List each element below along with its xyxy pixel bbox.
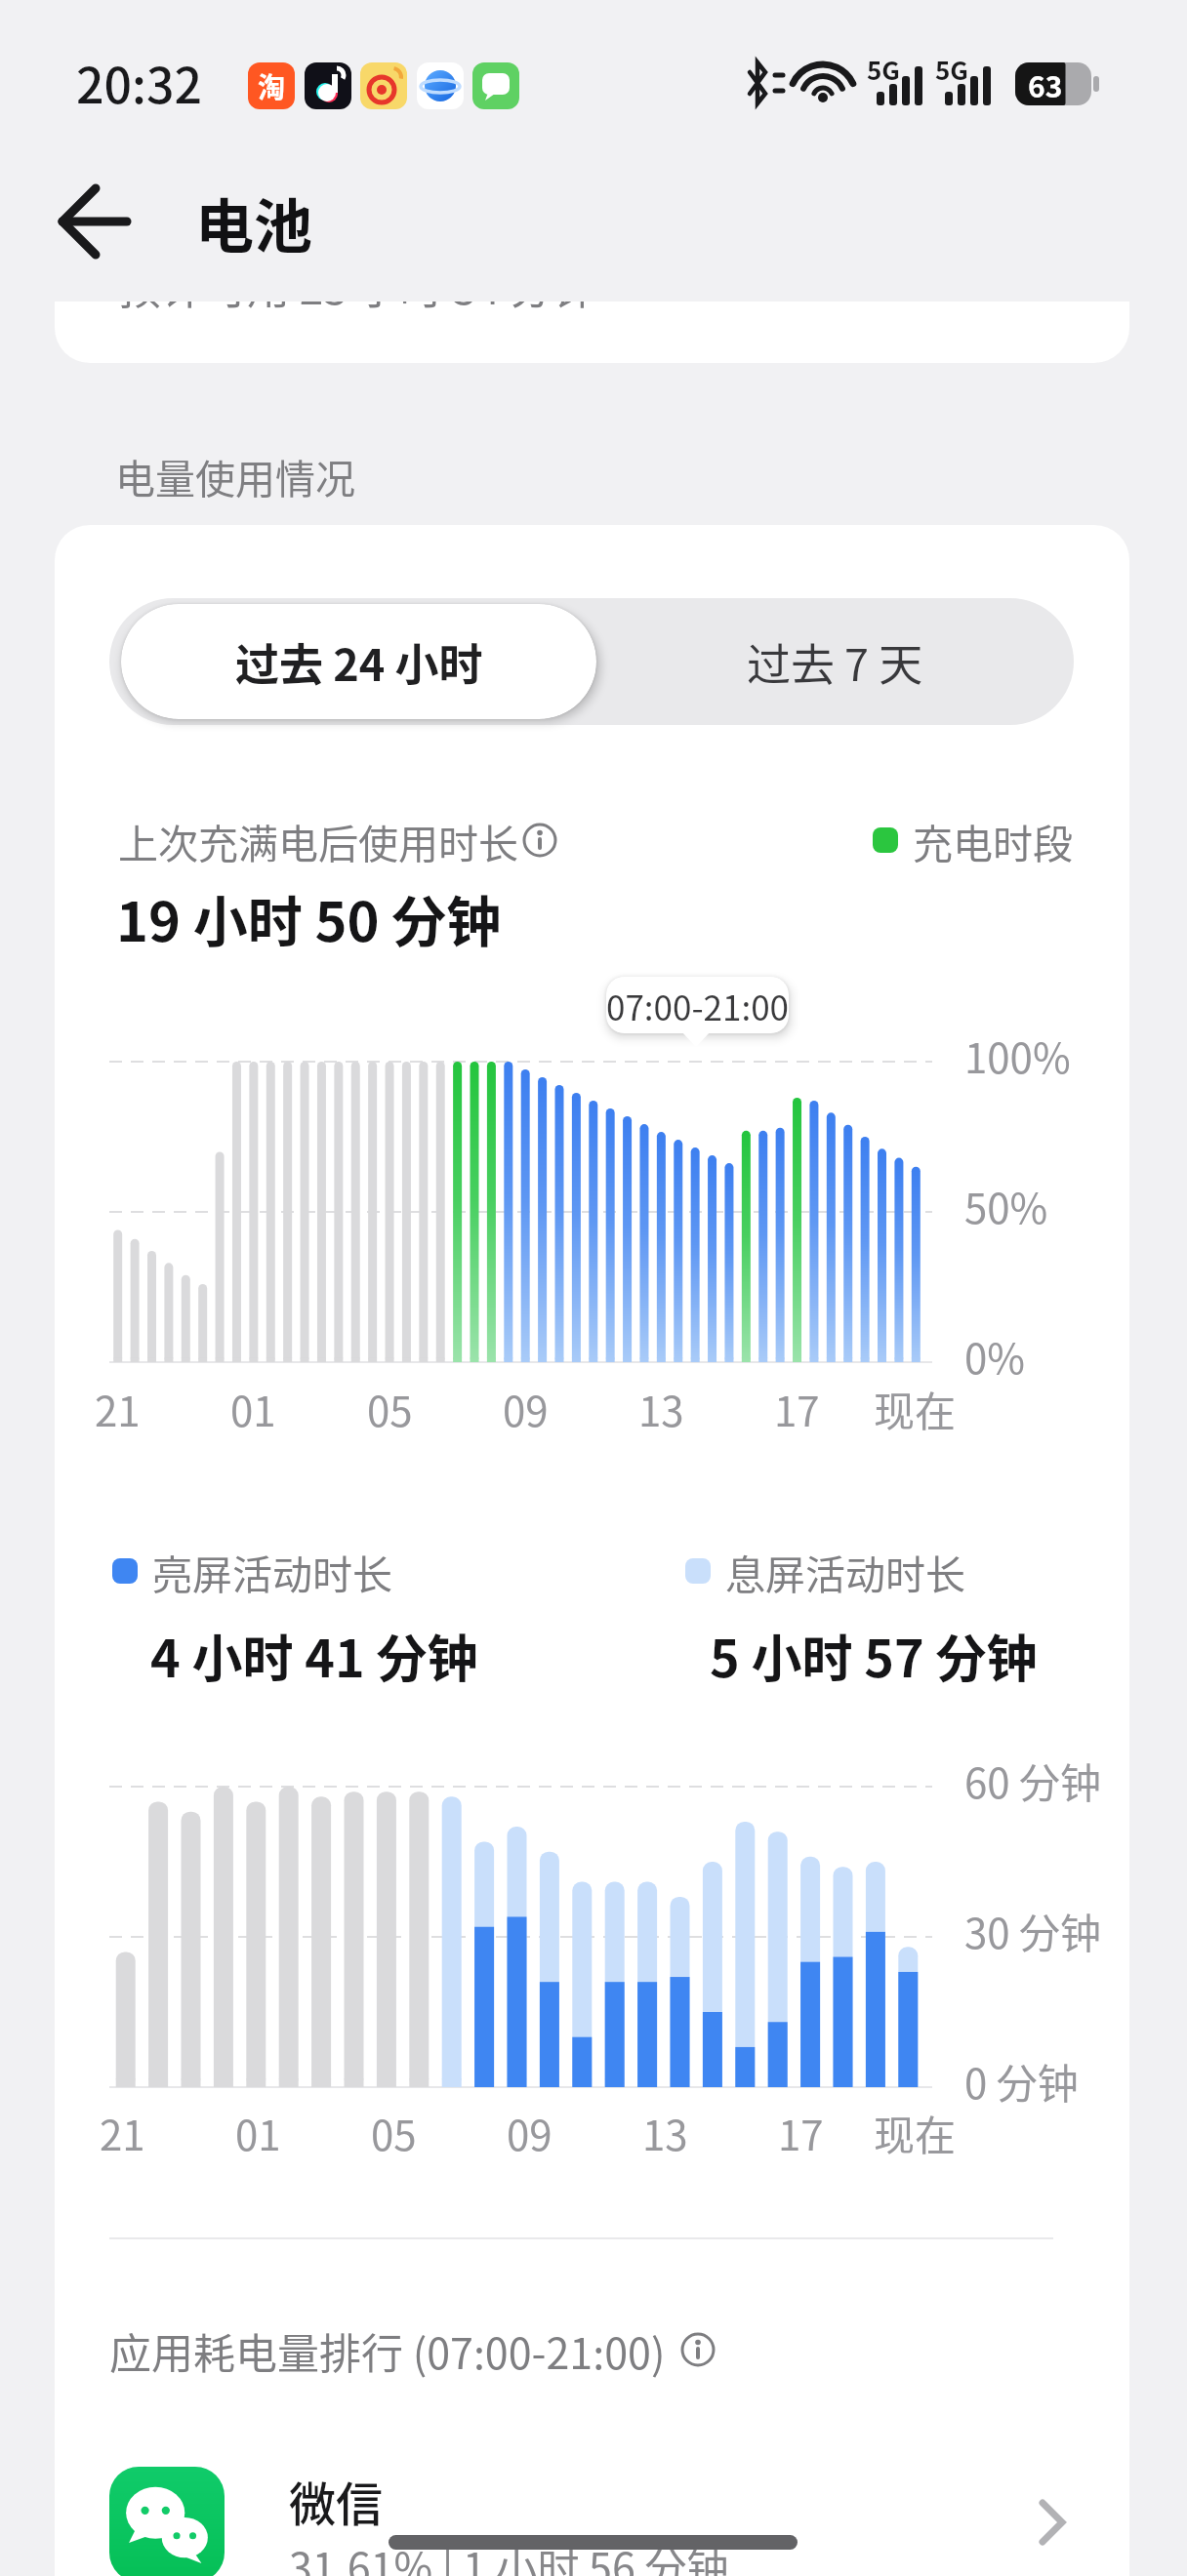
staticText: 31.61% | 1 小时 56 分钟	[289, 2535, 729, 2576]
staticText: 微信	[289, 2467, 384, 2535]
staticText: 4 小时 41 分钟	[150, 1619, 478, 1692]
staticText: 07:00-21:00	[606, 981, 789, 1030]
staticText: 13	[638, 1379, 684, 1438]
staticText: 30 分钟	[964, 1901, 1102, 1960]
staticText: 电池	[195, 180, 312, 264]
staticText: 17	[774, 1379, 820, 1438]
staticText: 20:32	[76, 47, 202, 117]
button[interactable]	[596, 604, 1074, 719]
staticText: 63	[1028, 63, 1063, 105]
staticText: 50%	[964, 1176, 1048, 1235]
staticText: 05	[371, 2103, 417, 2162]
staticText: 05	[367, 1379, 413, 1438]
staticText: 过去 24 小时	[235, 630, 483, 694]
button[interactable]	[88, 2439, 1103, 2576]
staticText: 09	[503, 1379, 549, 1438]
staticText: 亮屏活动时长	[152, 1543, 392, 1600]
staticText: 现在	[874, 1379, 957, 1438]
staticText: 过去 7 天	[747, 630, 923, 694]
staticText: 60 分钟	[964, 1751, 1102, 1810]
staticText: 5G	[867, 51, 900, 88]
staticText: 13	[642, 2103, 688, 2162]
staticText: 电量使用情况	[115, 447, 355, 504]
button[interactable]	[121, 604, 596, 719]
staticText: 现在	[874, 2103, 957, 2162]
staticText: 19 小时 50 分钟	[116, 878, 502, 957]
staticText: 预计可用 23 小时 34 分钟	[118, 302, 596, 316]
staticText: 01	[235, 2103, 281, 2162]
staticText: 21	[100, 2103, 145, 2162]
staticText: 0 分钟	[964, 2051, 1079, 2111]
staticText: 09	[507, 2103, 553, 2162]
staticText: 01	[230, 1379, 276, 1438]
staticText: 5G	[935, 51, 968, 88]
staticText: 100%	[964, 1026, 1071, 1085]
staticText: 5 小时 57 分钟	[710, 1619, 1038, 1692]
staticText: 上次充满电后使用时长	[118, 812, 518, 869]
staticText: 息屏活动时长	[725, 1543, 965, 1600]
staticText: 充电时段	[913, 812, 1073, 869]
button[interactable]	[44, 185, 151, 258]
staticText: 应用耗电量排行 (07:00-21:00)	[109, 2320, 666, 2381]
staticText: 17	[778, 2103, 824, 2162]
staticText: 0%	[964, 1326, 1025, 1386]
staticText: 21	[95, 1379, 141, 1438]
staticText: 淘	[258, 66, 286, 106]
